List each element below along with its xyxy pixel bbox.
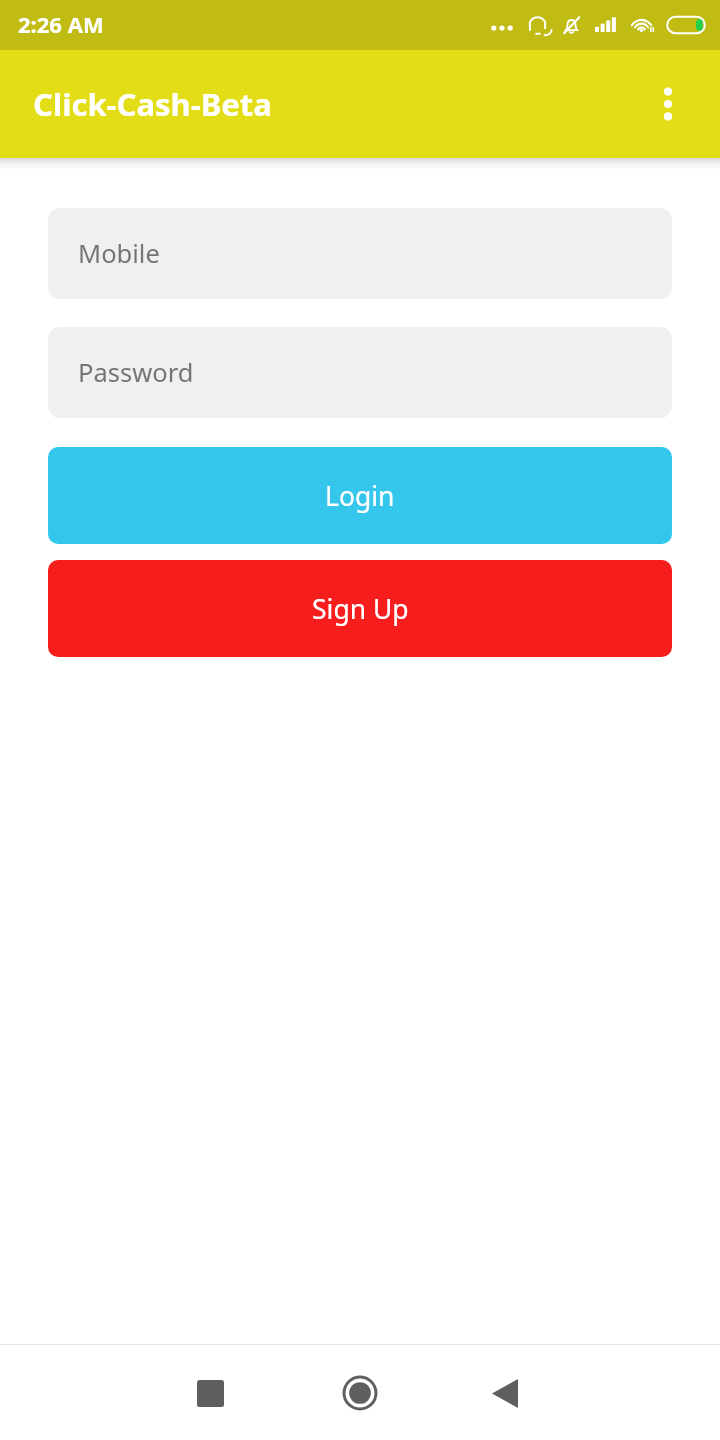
staticText: Login (325, 478, 395, 514)
staticText: 2:26 AM (18, 9, 104, 39)
staticText: Click-Cash-Beta (33, 83, 272, 125)
button[interactable]: Back (481, 1369, 529, 1417)
button[interactable]: Login (48, 447, 672, 544)
button[interactable]: Recent apps (186, 1369, 234, 1417)
staticText: Password (78, 355, 194, 390)
button[interactable]: Password (48, 327, 672, 418)
button[interactable]: Mobile (48, 208, 672, 299)
button[interactable]: Sign Up (48, 560, 672, 657)
button[interactable]: Home (336, 1369, 384, 1417)
button[interactable]: More options (644, 80, 692, 128)
staticText: Sign Up (312, 591, 409, 627)
staticText: Mobile (78, 236, 160, 271)
